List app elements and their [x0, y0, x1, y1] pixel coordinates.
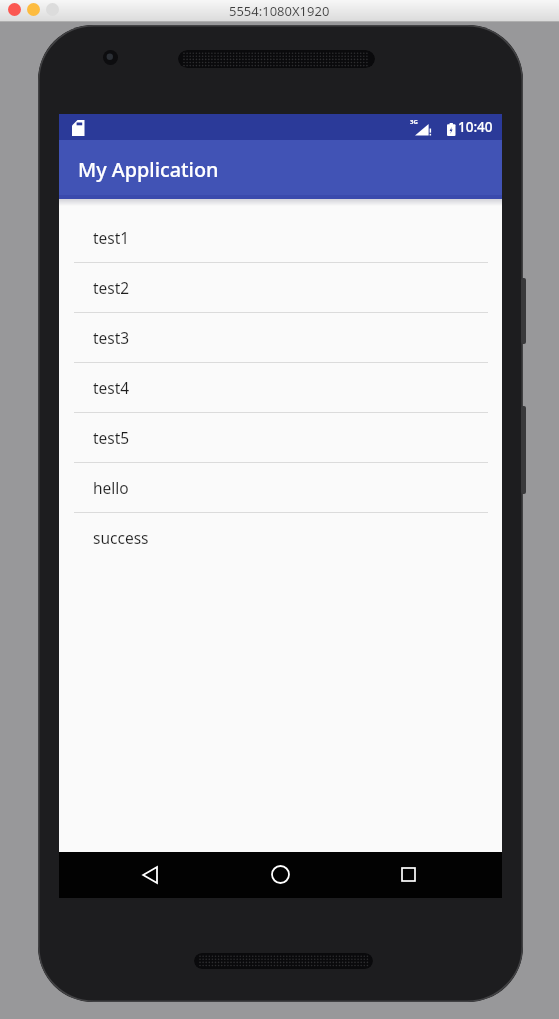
button[interactable]: test4 [74, 363, 488, 412]
button[interactable] [265, 859, 296, 890]
button[interactable] [27, 3, 40, 16]
staticText: test2 [93, 277, 130, 298]
staticText: My Application [78, 156, 219, 183]
button[interactable] [134, 859, 165, 890]
button[interactable] [8, 3, 21, 16]
staticText: test5 [93, 427, 130, 448]
button[interactable] [393, 859, 424, 890]
staticText: 5554:1080X1920 [229, 2, 330, 20]
staticText: 10:40 [458, 118, 493, 136]
button[interactable]: test5 [74, 413, 488, 462]
button[interactable]: test2 [74, 263, 488, 312]
staticText: 3G [410, 118, 418, 126]
staticText: test1 [93, 227, 130, 248]
button[interactable]: test3 [74, 313, 488, 362]
staticText: test3 [93, 327, 130, 348]
staticText: success [93, 527, 149, 548]
button[interactable]: test1 [74, 213, 488, 262]
staticText: test4 [93, 377, 130, 398]
button[interactable]: success [74, 513, 488, 562]
staticText: hello [93, 477, 129, 498]
button[interactable] [46, 3, 59, 16]
button[interactable]: hello [74, 463, 488, 512]
